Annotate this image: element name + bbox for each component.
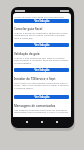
staticText: Mensagens de comunicados	[14, 104, 56, 108]
staticText: Acesse o site utilizando seu login e a s…	[14, 56, 69, 65]
button[interactable]: Ver Solução	[14, 19, 69, 23]
button[interactable]: Ver Solução	[14, 95, 69, 99]
button[interactable]: Ver Solução	[14, 43, 69, 47]
button[interactable]: Ver Solução	[14, 68, 69, 72]
staticText: Acesse o portal do prestador, selecione …	[14, 31, 69, 40]
staticText: Como cancelar uma guia TISS emitida pelo…	[14, 15, 69, 21]
staticText: Cancelar guia fiscal	[14, 27, 43, 31]
staticText: Um sistema unificado que envia ao assina…	[14, 108, 69, 114]
staticText: Validação da guia	[14, 52, 40, 56]
staticText: Ver Solução	[34, 43, 50, 47]
staticText: Com todas as informações necessárias par…	[14, 81, 69, 90]
staticText: Instalar do TISService e Sept	[14, 77, 56, 81]
staticText: Ver Solução	[34, 19, 50, 23]
staticText: Ver Solução	[34, 68, 50, 72]
staticText: Ver Solução	[34, 95, 50, 99]
